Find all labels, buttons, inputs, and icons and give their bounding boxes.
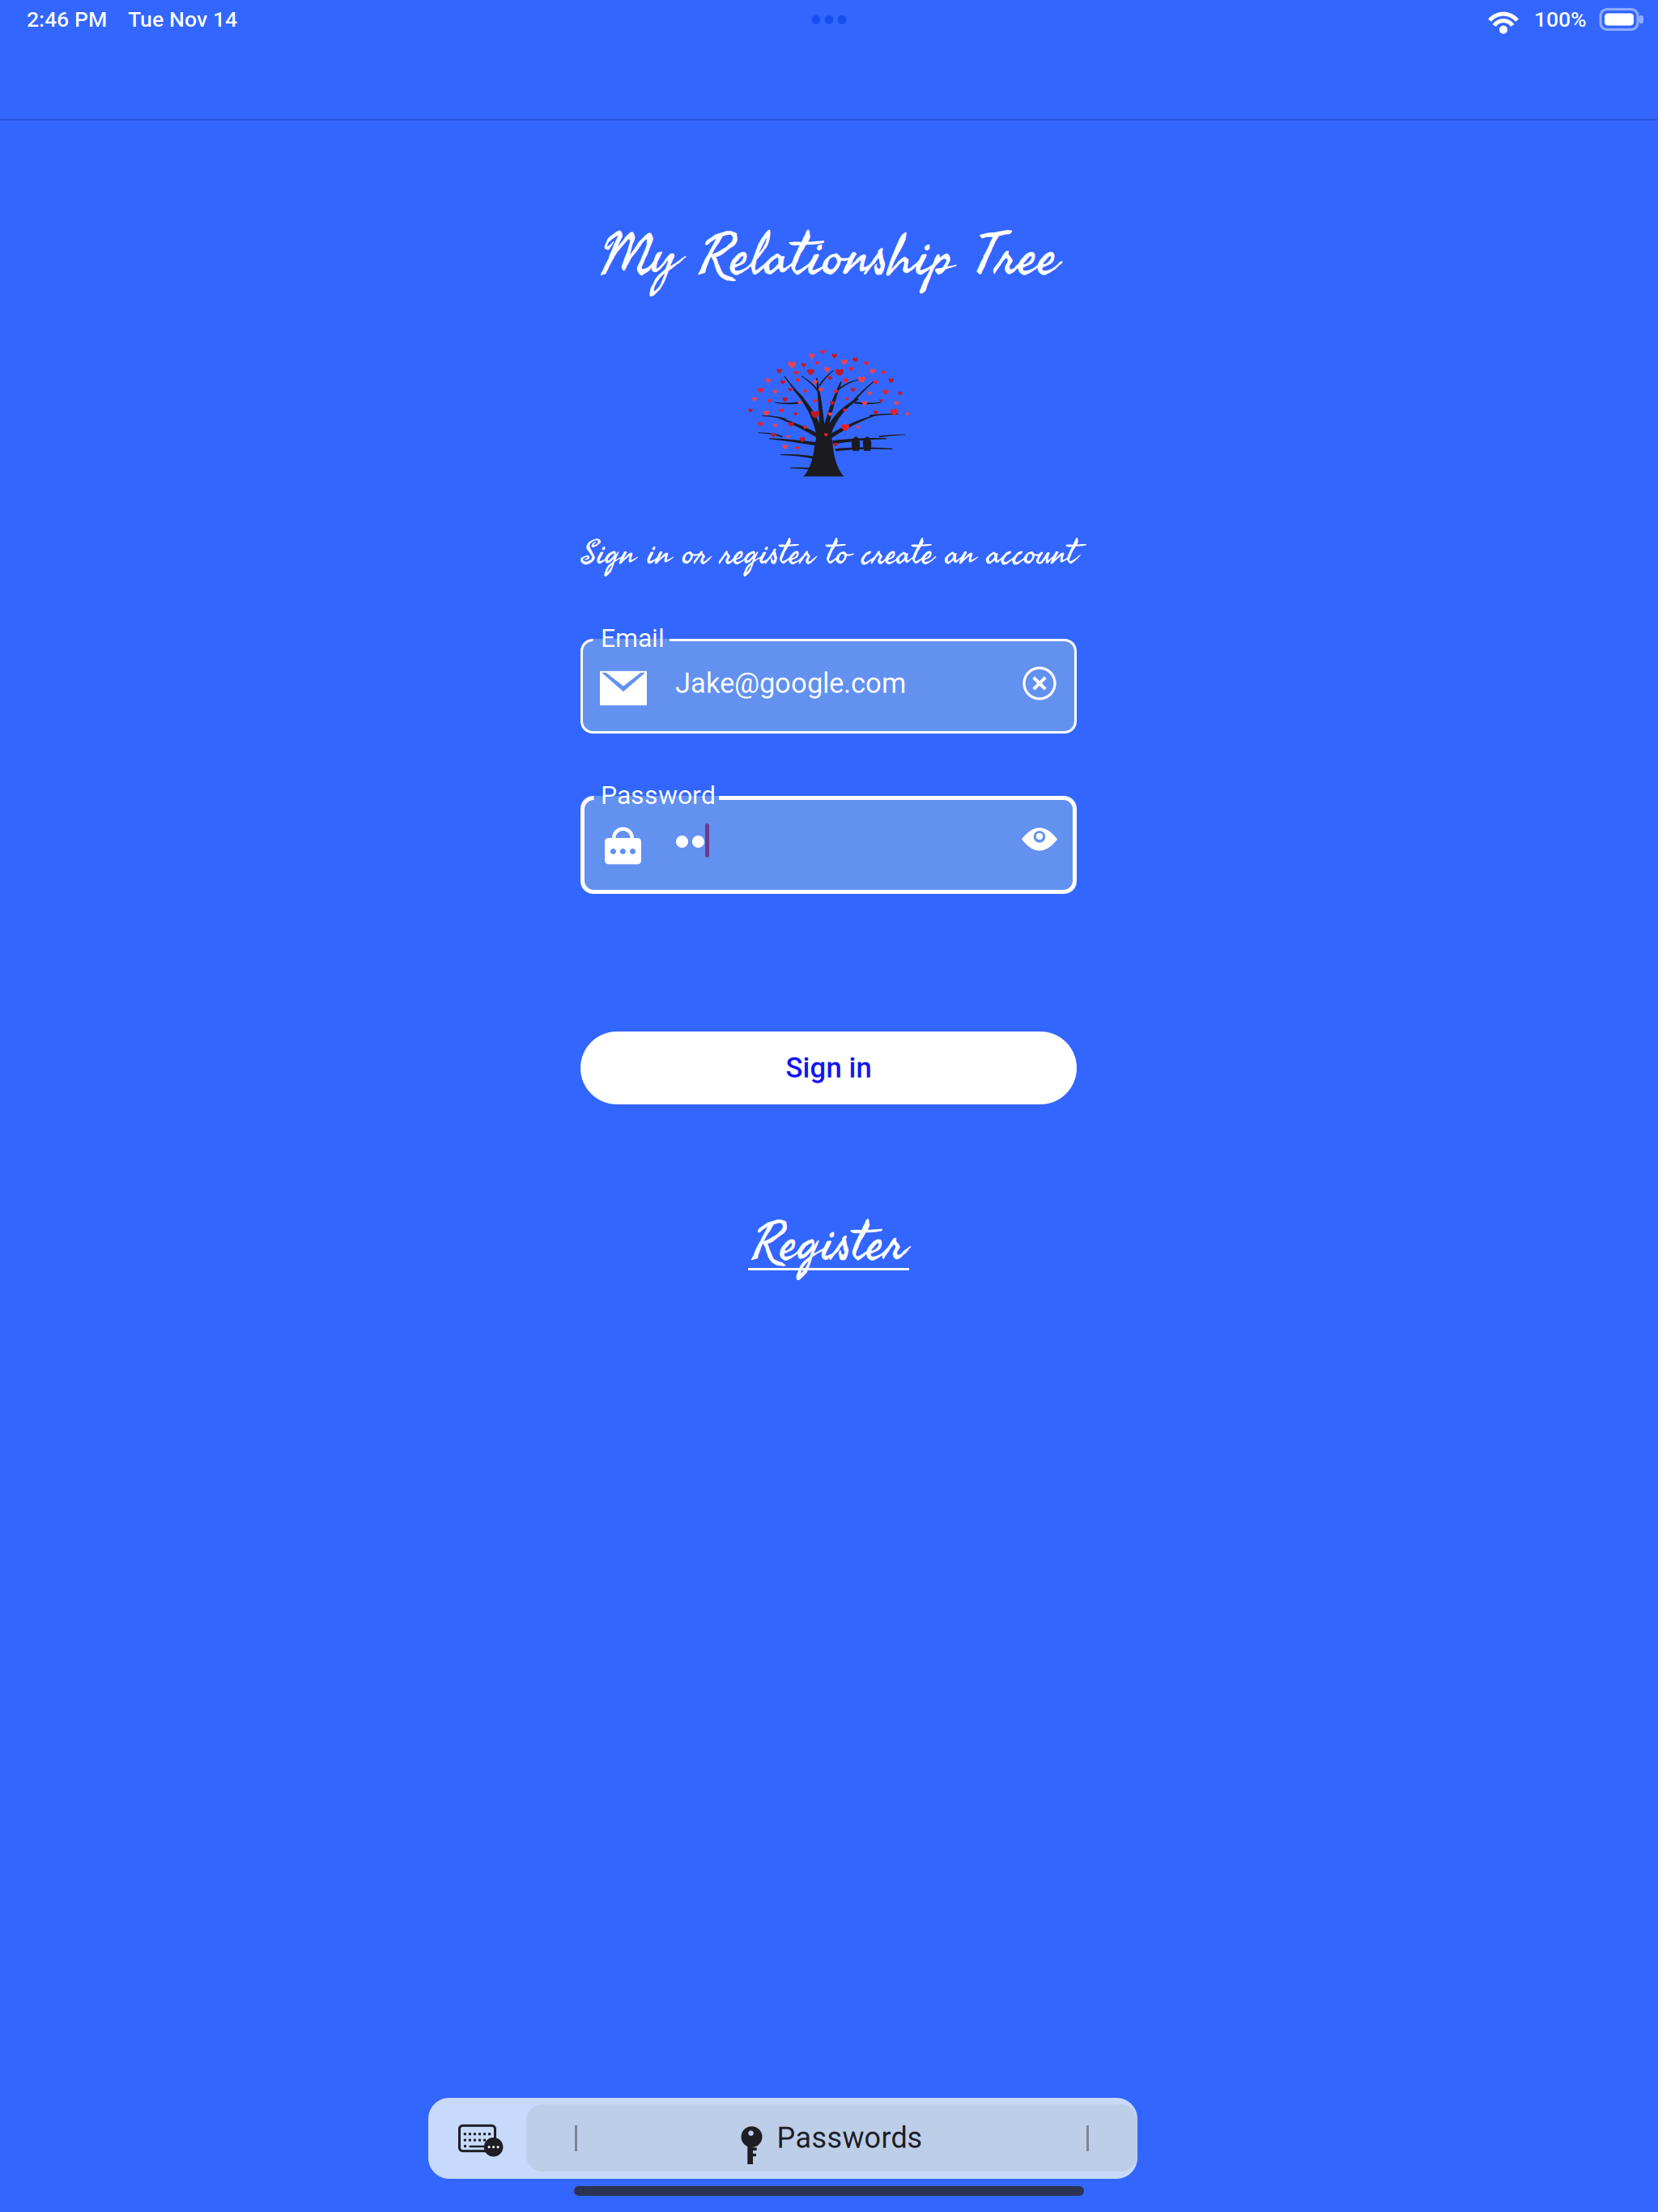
button[interactable]: Passwords <box>526 2104 1137 2172</box>
button[interactable]: Password <box>580 796 1077 894</box>
staticText: 100% <box>1534 7 1587 32</box>
button[interactable]: Sign in <box>580 1032 1077 1104</box>
staticText: Passwords <box>777 2121 923 2155</box>
staticText: Email <box>601 623 665 653</box>
staticText: Sign in or register to create an account <box>581 521 1077 583</box>
staticText: Sign in <box>786 1052 872 1084</box>
staticText: 2:46 PM <box>27 7 107 32</box>
button[interactable]: Jake@google.com <box>580 639 1077 734</box>
staticText: Password <box>601 780 716 810</box>
button[interactable]: Register <box>0 1189 1658 1294</box>
staticText: My Relationship Tree <box>599 201 1059 308</box>
button[interactable]: Keyboard options <box>428 2098 526 2179</box>
staticText: Jake@google.com <box>675 667 906 700</box>
staticText: Tue Nov 14 <box>128 7 237 32</box>
staticText: Register <box>752 1192 906 1290</box>
